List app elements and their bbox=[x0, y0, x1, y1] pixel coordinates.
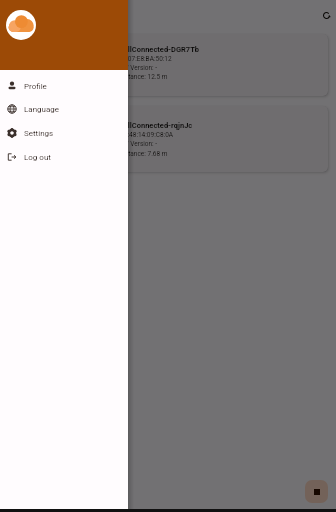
staticText: Language bbox=[24, 105, 60, 114]
staticText: BellConnected-DGR7Tb bbox=[119, 45, 200, 54]
staticText: Log out bbox=[24, 153, 51, 162]
staticText: DC:48:14:09:C8:0A bbox=[119, 131, 174, 139]
button[interactable]: BellConnected-rqjnJc bbox=[8, 106, 328, 172]
button[interactable]: Log out bbox=[0, 145, 128, 169]
staticText: Profile bbox=[24, 82, 47, 91]
staticText: Settings bbox=[24, 129, 54, 138]
staticText: SW Version: - bbox=[119, 64, 158, 72]
button[interactable]: Language bbox=[0, 97, 128, 121]
staticText: F0:07:E8:BA:50:12 bbox=[119, 55, 172, 63]
staticText: Distance: 7.68 m bbox=[119, 150, 168, 158]
button[interactable]: Stop scanning bbox=[305, 480, 328, 503]
button[interactable]: Refresh bbox=[314, 3, 336, 27]
staticText: BellConnected-rqjnJc bbox=[119, 121, 193, 130]
button[interactable]: Profile bbox=[0, 74, 128, 98]
staticText: SW Version: - bbox=[119, 140, 158, 148]
staticText: Distance: 12.5 m bbox=[119, 73, 168, 81]
button[interactable]: BellConnected-DGR7Tb bbox=[8, 34, 328, 96]
button[interactable]: Settings bbox=[0, 121, 128, 145]
